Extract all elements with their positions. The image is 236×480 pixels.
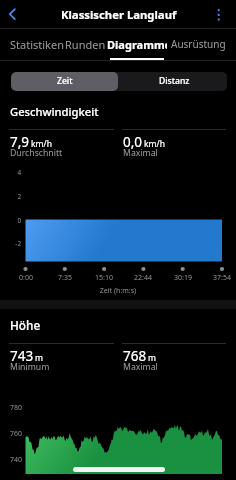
staticText: 768 [123,347,147,365]
staticText: 22:44 [129,273,157,283]
staticText: 30:19 [169,273,197,283]
staticText: Geschwindigkeit [10,104,99,119]
button[interactable]: Back [0,3,24,27]
staticText: 760 [2,429,22,439]
staticText: Maximal [123,361,158,373]
staticText: -2 [8,239,21,248]
staticText: 0 [8,216,21,225]
staticText: Durchschnitt [10,147,63,159]
staticText: Zeit [57,75,73,87]
staticText: 4 [8,168,21,177]
button[interactable]: Runden [63,29,107,61]
staticText: Ausrüstung [171,37,226,51]
staticText: m [148,352,156,364]
button[interactable]: Ausrüstung [167,29,229,61]
staticText: 15:10 [90,273,118,283]
button[interactable]: Distanz [118,72,227,91]
staticText: 780 [2,403,22,413]
staticText: Distanz [159,75,190,87]
staticText: Höhe [10,317,41,333]
staticText: km/h [144,138,165,150]
staticText: Maximal [123,147,158,159]
staticText: 740 [2,455,22,465]
staticText: km/h [31,138,52,150]
staticText: 743 [10,347,34,365]
button[interactable]: More options [212,3,236,27]
staticText: Statistiken [10,37,64,52]
staticText: 2 [8,192,21,201]
staticText: Runden [65,37,106,52]
staticText: Diagramme [107,37,167,52]
button[interactable]: Zeit [11,72,118,91]
button[interactable]: Diagramme [107,29,167,61]
staticText: 7:35 [51,273,79,283]
staticText: m [35,352,43,364]
button[interactable]: Statistiken [8,29,66,61]
staticText: 0,0 [123,133,143,151]
staticText: 37:54 [208,273,236,283]
staticText: Minimum [10,361,50,373]
staticText: 0:00 [12,273,40,283]
staticText: Klassischer Langlauf [61,7,177,22]
staticText: 7,9 [10,133,30,151]
staticText: Zeit (h:m:s) [0,286,236,296]
